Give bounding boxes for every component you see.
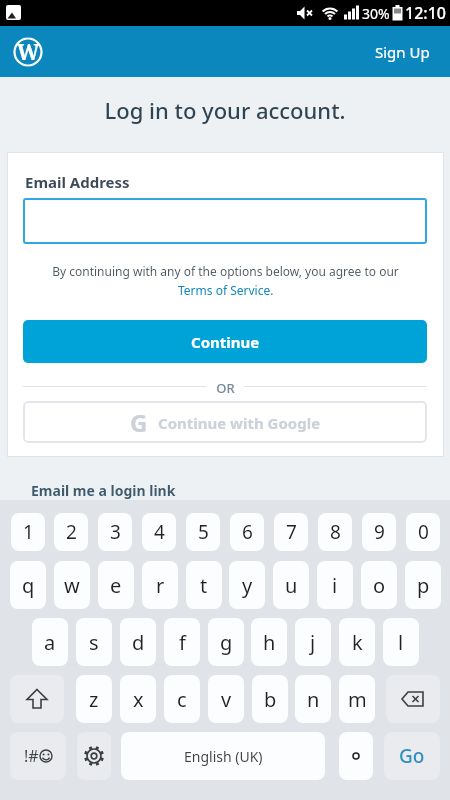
button[interactable]: a xyxy=(32,618,68,666)
button[interactable]: y xyxy=(229,561,265,609)
staticText: p xyxy=(417,572,430,599)
button[interactable]: Sign Up xyxy=(371,38,434,66)
staticText: g xyxy=(220,629,233,656)
button[interactable]: 3 xyxy=(98,513,132,551)
staticText: 9 xyxy=(374,519,385,545)
staticText: w xyxy=(64,572,80,599)
staticText: m xyxy=(348,686,367,713)
staticText: Terms of Service. xyxy=(178,282,274,298)
staticText: 6 xyxy=(242,519,253,545)
staticText: a xyxy=(44,629,56,656)
staticText: h xyxy=(263,629,276,656)
staticText: j xyxy=(310,629,316,656)
button[interactable]: u xyxy=(273,561,309,609)
staticText: x xyxy=(133,686,144,713)
staticText: OR xyxy=(7,379,444,397)
staticText: G xyxy=(130,406,148,439)
button[interactable]: w xyxy=(54,561,90,609)
button[interactable]: k xyxy=(339,618,375,666)
button[interactable]: n xyxy=(295,675,331,723)
button[interactable]: d xyxy=(120,618,156,666)
staticText: r xyxy=(156,572,165,599)
button[interactable]: f xyxy=(164,618,200,666)
staticText: s xyxy=(89,629,99,656)
staticText: z xyxy=(89,686,99,713)
button[interactable]: m xyxy=(339,675,375,723)
button[interactable]: 8 xyxy=(318,513,352,551)
button[interactable]: Go xyxy=(384,732,440,780)
staticText: n xyxy=(307,686,320,713)
button[interactable] xyxy=(77,732,111,780)
button[interactable]: i xyxy=(317,561,353,609)
staticText: 4 xyxy=(154,519,165,545)
button[interactable]: j xyxy=(295,618,331,666)
staticText: 5 xyxy=(198,519,209,545)
button[interactable]: Terms of Service. xyxy=(178,282,274,298)
staticText: !# xyxy=(24,745,39,767)
staticText: y xyxy=(242,572,253,599)
button[interactable]: v xyxy=(208,675,244,723)
button[interactable]: l xyxy=(383,618,419,666)
button[interactable]: Continue xyxy=(23,320,427,363)
staticText: 2 xyxy=(66,519,77,545)
staticText: Continue xyxy=(191,332,260,352)
staticText: t xyxy=(200,572,208,599)
staticText: 1 xyxy=(23,519,34,545)
staticText: Go xyxy=(399,743,425,769)
button[interactable]: r xyxy=(142,561,178,609)
button[interactable]: 0 xyxy=(406,513,440,551)
staticText: English (UK) xyxy=(184,747,263,766)
staticText: 7 xyxy=(286,519,297,545)
button[interactable]: e xyxy=(98,561,134,609)
staticText: W xyxy=(17,38,40,66)
staticText: d xyxy=(132,629,145,656)
button[interactable]: c xyxy=(164,675,200,723)
button[interactable]: 7 xyxy=(274,513,308,551)
staticText: 0 xyxy=(418,519,429,545)
staticText: 30% xyxy=(362,4,390,23)
button[interactable]: p xyxy=(405,561,441,609)
button[interactable]: English (UK) xyxy=(121,732,325,780)
button[interactable]: 1 xyxy=(11,513,45,551)
button[interactable]: 6 xyxy=(230,513,264,551)
staticText: v xyxy=(221,686,232,713)
staticText: q xyxy=(22,572,35,599)
button[interactable] xyxy=(339,732,373,780)
button[interactable]: 2 xyxy=(54,513,88,551)
button[interactable] xyxy=(10,675,64,723)
staticText: Sign Up xyxy=(375,42,430,62)
button[interactable]: q xyxy=(10,561,46,609)
button[interactable] xyxy=(23,198,427,244)
button[interactable]: h xyxy=(251,618,287,666)
staticText: e xyxy=(110,572,122,599)
staticText: f xyxy=(179,629,186,656)
staticText: u xyxy=(285,572,298,599)
button[interactable]: G xyxy=(23,401,427,443)
button[interactable]: z xyxy=(76,675,112,723)
staticText: l xyxy=(398,629,404,656)
staticText: 8 xyxy=(330,519,341,545)
button[interactable]: 4 xyxy=(142,513,176,551)
button[interactable]: 5 xyxy=(186,513,220,551)
button[interactable]: s xyxy=(76,618,112,666)
staticText: o xyxy=(373,572,386,599)
staticText: c xyxy=(177,686,187,713)
staticText: By continuing with any of the options be… xyxy=(7,263,444,279)
staticText: Email Address xyxy=(25,172,130,192)
button[interactable]: g xyxy=(208,618,244,666)
staticText: 3 xyxy=(110,519,121,545)
button[interactable]: b xyxy=(252,675,288,723)
staticText: Email me a login link xyxy=(31,481,176,500)
button[interactable] xyxy=(386,675,440,723)
staticText: i xyxy=(332,572,338,599)
staticText: Continue with Google xyxy=(158,413,321,433)
staticText: 12:10 xyxy=(405,2,446,24)
button[interactable]: !# xyxy=(10,732,66,780)
staticText: b xyxy=(264,686,277,713)
button[interactable]: 9 xyxy=(362,513,396,551)
staticText: Log in to your account. xyxy=(0,95,450,125)
button[interactable]: Email me a login link xyxy=(31,481,176,500)
button[interactable]: o xyxy=(361,561,397,609)
button[interactable]: t xyxy=(186,561,222,609)
button[interactable]: x xyxy=(120,675,156,723)
